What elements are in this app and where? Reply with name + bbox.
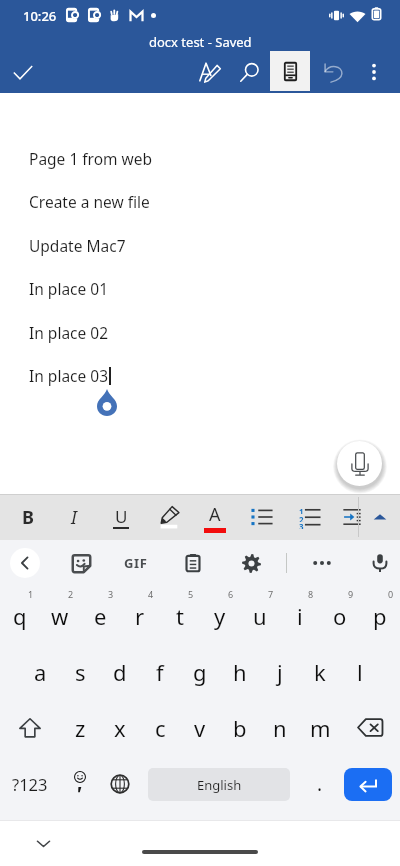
button[interactable]: GIF — [121, 548, 151, 578]
staticText: 2 — [299, 514, 304, 522]
button[interactable]: i — [280, 588, 320, 643]
staticText: I — [71, 505, 77, 530]
staticText: o — [333, 601, 347, 631]
button[interactable]: Stickers — [66, 548, 96, 578]
button[interactable]: Back — [10, 548, 40, 578]
staticText: y — [214, 601, 226, 631]
staticText: n — [273, 713, 287, 743]
button[interactable]: Settings — [236, 548, 266, 578]
button[interactable]: z — [60, 700, 100, 755]
staticText: Page 1 from web — [29, 148, 153, 169]
button[interactable]: l — [340, 644, 380, 699]
button[interactable]: Draw — [189, 51, 231, 93]
button[interactable]: Mobile view — [270, 51, 310, 91]
staticText: s — [75, 657, 86, 687]
button[interactable]: s — [60, 644, 100, 699]
staticText: 8 — [308, 588, 314, 600]
button[interactable]: Clipboard — [178, 548, 208, 578]
button[interactable]: Hide keyboard — [30, 830, 56, 856]
button[interactable]: o — [320, 588, 360, 643]
staticText: 3 — [108, 588, 114, 600]
staticText: 6 — [228, 588, 234, 600]
button[interactable]: u — [240, 588, 280, 643]
staticText: 9 — [348, 588, 354, 600]
button[interactable]: k — [300, 644, 340, 699]
button[interactable]: Voice input — [365, 548, 395, 578]
staticText: A — [209, 502, 221, 527]
staticText: b — [233, 713, 247, 743]
button[interactable]: Change language — [100, 756, 140, 811]
button[interactable]: r — [120, 588, 160, 643]
staticText: U — [115, 505, 128, 528]
staticText: e — [94, 601, 107, 631]
button[interactable]: y — [200, 588, 240, 643]
staticText: a — [34, 657, 47, 687]
button[interactable]: I — [51, 494, 96, 540]
staticText: q — [13, 601, 27, 631]
staticText: j — [277, 657, 283, 687]
button[interactable]: Emoji and comma — [60, 756, 100, 811]
button[interactable]: Font color — [192, 494, 237, 540]
staticText: p — [373, 601, 387, 631]
staticText: r — [135, 601, 145, 631]
button[interactable]: t — [160, 588, 200, 643]
button[interactable]: . — [300, 756, 340, 811]
button[interactable]: b — [220, 700, 260, 755]
button[interactable]: Dictate — [337, 441, 382, 486]
button[interactable]: a — [20, 644, 60, 699]
staticText: . — [317, 771, 323, 797]
staticText: t — [176, 601, 184, 631]
staticText: In place 01 — [29, 278, 109, 299]
button[interactable]: g — [180, 644, 220, 699]
button[interactable]: Undo — [312, 51, 354, 93]
staticText: 0 — [388, 588, 394, 600]
staticText: 2 — [68, 588, 74, 600]
staticText: x — [114, 713, 126, 743]
button[interactable]: w — [40, 588, 80, 643]
button[interactable]: English — [148, 768, 290, 801]
button[interactable]: j — [260, 644, 300, 699]
button[interactable]: Highlight — [146, 494, 191, 540]
button[interactable]: q — [0, 588, 40, 643]
button[interactable]: e — [80, 588, 120, 643]
staticText: d — [113, 657, 127, 687]
staticText: 4 — [148, 588, 154, 600]
staticText: 10:26 — [23, 7, 57, 25]
staticText: 1 — [28, 588, 34, 600]
button[interactable]: ?123 — [0, 756, 60, 811]
staticText: u — [253, 601, 267, 631]
button[interactable]: More — [307, 548, 337, 578]
staticText: docx test - Saved — [149, 33, 252, 51]
button[interactable]: v — [180, 700, 220, 755]
button[interactable]: h — [220, 644, 260, 699]
button[interactable]: U — [98, 494, 143, 540]
button[interactable]: c — [140, 700, 180, 755]
staticText: w — [51, 601, 69, 631]
button[interactable]: Done — [2, 51, 44, 93]
button[interactable]: p — [360, 588, 400, 643]
staticText: c — [155, 713, 166, 743]
button[interactable]: f — [140, 644, 180, 699]
button[interactable]: B — [5, 494, 50, 540]
button[interactable]: Shift — [0, 700, 60, 755]
button[interactable]: Backspace — [340, 700, 400, 755]
staticText: m — [310, 713, 331, 743]
button[interactable]: Search — [228, 51, 270, 93]
button[interactable]: m — [300, 700, 340, 755]
button[interactable]: x — [100, 700, 140, 755]
button[interactable]: Bulleted list — [239, 494, 284, 540]
staticText: f — [156, 657, 164, 687]
staticText: 1 — [299, 506, 304, 514]
staticText: ?123 — [12, 773, 48, 795]
button[interactable]: Increase indent — [329, 494, 374, 540]
staticText: h — [233, 657, 247, 687]
button[interactable]: d — [100, 644, 140, 699]
staticText: v — [194, 713, 206, 743]
button[interactable]: n — [260, 700, 300, 755]
button[interactable]: Expand toolbar — [360, 494, 400, 540]
button[interactable]: Numbered list — [286, 494, 331, 540]
staticText: k — [314, 657, 326, 687]
staticText: 5 — [188, 588, 194, 600]
button[interactable]: Enter — [344, 768, 392, 801]
button[interactable]: More options — [353, 51, 395, 93]
